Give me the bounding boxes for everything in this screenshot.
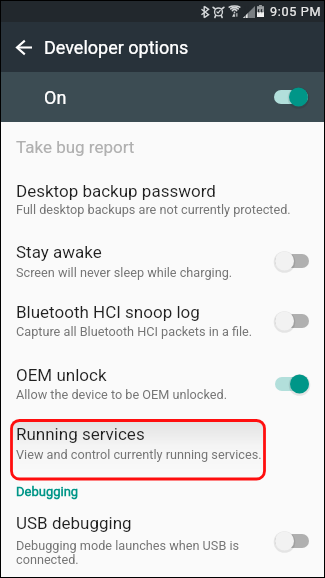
button[interactable]	[1, 504, 324, 574]
staticText: Developer options	[44, 37, 189, 58]
button[interactable]	[1, 354, 324, 411]
staticText: 9:05 PM	[270, 4, 322, 19]
staticText: Full desktop backups are not currently p…	[16, 202, 291, 217]
button[interactable]	[1, 232, 324, 289]
button[interactable]: Navigate up	[2, 22, 45, 72]
staticText: On	[44, 87, 67, 108]
staticText: Bluetooth HCI snoop log	[16, 302, 200, 322]
button[interactable]: On	[1, 72, 324, 122]
staticText: Stay awake	[16, 242, 102, 262]
staticText: Take bug report	[16, 137, 135, 157]
staticText: Allow the device to be OEM unlocked.	[16, 387, 227, 402]
staticText: Running services	[16, 424, 145, 444]
button[interactable]	[1, 415, 324, 472]
staticText: Debugging mode launches when USB is conn…	[16, 538, 240, 567]
staticText: View and control currently running servi…	[16, 447, 262, 462]
button[interactable]	[1, 125, 324, 166]
staticText: Capture all Bluetooth HCI packets in a f…	[16, 324, 253, 339]
button[interactable]	[1, 171, 324, 227]
button[interactable]	[1, 292, 324, 349]
staticText: Screen will never sleep while charging.	[16, 265, 233, 280]
staticText: OEM unlock	[16, 365, 107, 385]
staticText: Debugging	[16, 484, 79, 499]
staticText: Desktop backup password	[16, 181, 216, 201]
staticText: USB debugging	[16, 513, 132, 533]
